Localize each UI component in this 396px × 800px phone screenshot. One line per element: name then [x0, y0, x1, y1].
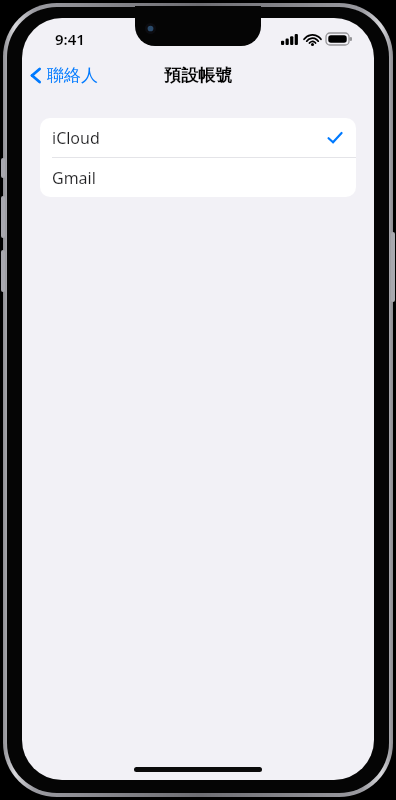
- staticText: 9:41: [55, 29, 85, 49]
- button[interactable]: Back: [22, 61, 108, 90]
- other: Back: [30, 66, 42, 85]
- staticText: 預設帳號: [164, 65, 232, 86]
- button[interactable]: iCloud: [40, 118, 356, 157]
- button[interactable]: Gmail: [40, 158, 356, 197]
- staticText: iCloud: [52, 127, 100, 149]
- staticText: 聯絡人: [47, 65, 98, 86]
- other: Selected: [328, 132, 342, 144]
- staticText: Gmail: [52, 167, 96, 189]
